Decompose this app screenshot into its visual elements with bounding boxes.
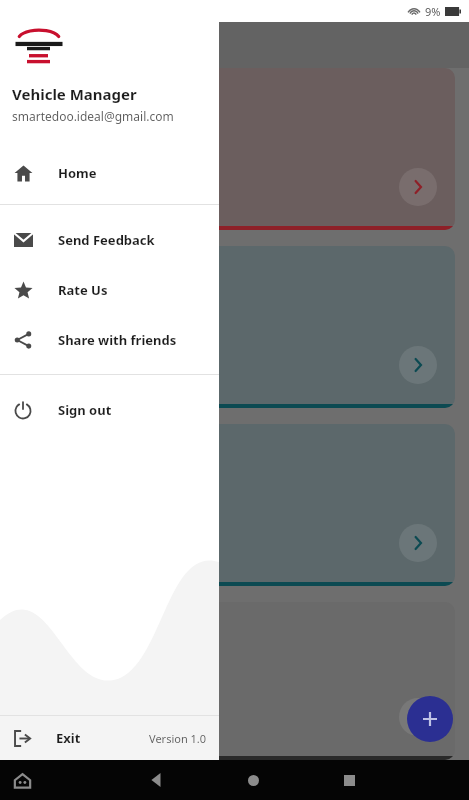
button[interactable] bbox=[12, 246, 455, 408]
button[interactable]: Send Feedback bbox=[0, 215, 219, 265]
button[interactable]: Home bbox=[0, 148, 219, 198]
button[interactable] bbox=[12, 424, 455, 586]
staticText: Sign out bbox=[58, 401, 112, 419]
button[interactable]: Exit bbox=[0, 716, 219, 760]
button[interactable] bbox=[12, 602, 455, 760]
button[interactable]: Rate Us bbox=[0, 265, 219, 315]
staticText: Version 1.0 bbox=[149, 731, 207, 746]
staticText: Home bbox=[58, 164, 97, 182]
staticText: smartedoo.ideal@gmail.com bbox=[12, 108, 174, 124]
button[interactable] bbox=[12, 68, 455, 230]
staticText: Share with friends bbox=[58, 331, 177, 349]
staticText: Send Feedback bbox=[58, 231, 155, 249]
staticText: 9% bbox=[425, 4, 441, 19]
staticText: Rate Us bbox=[58, 281, 108, 299]
staticText: Vehicle Manager bbox=[12, 84, 137, 104]
button[interactable]: Add vehicle bbox=[407, 696, 453, 742]
staticText: Exit bbox=[56, 729, 81, 747]
button[interactable]: Sign out bbox=[0, 385, 219, 435]
button[interactable]: Share with friends bbox=[0, 315, 219, 365]
